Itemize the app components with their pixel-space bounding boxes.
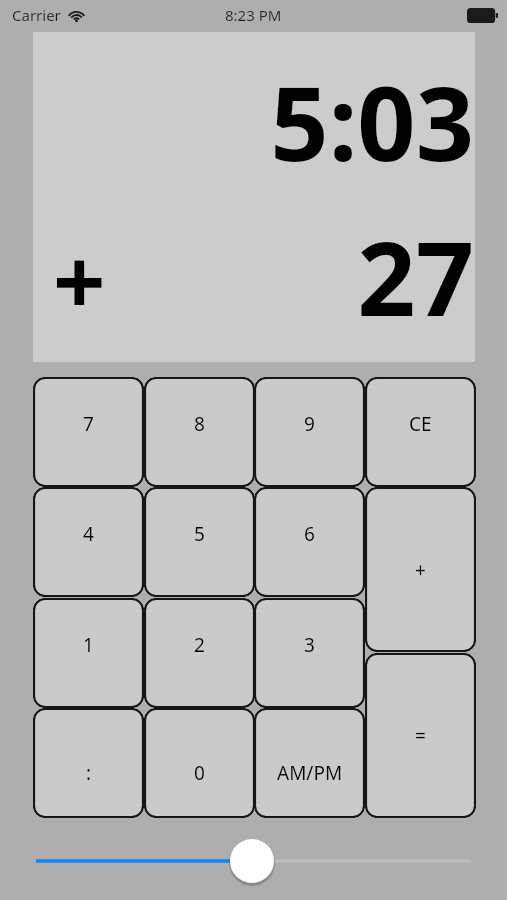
staticText: 6: [304, 521, 315, 547]
staticText: :: [86, 760, 92, 786]
button[interactable]: =: [365, 653, 476, 818]
button[interactable]: +: [365, 487, 476, 652]
button[interactable]: 3: [254, 598, 365, 708]
staticText: 3: [304, 632, 315, 658]
button[interactable]: 4: [33, 487, 144, 597]
staticText: 1: [83, 632, 94, 658]
staticText: 9: [304, 411, 315, 437]
button[interactable]: 8: [144, 377, 255, 487]
staticText: +: [53, 217, 106, 342]
staticText: 7: [83, 411, 94, 437]
staticText: 0: [194, 760, 205, 786]
button[interactable]: 9: [254, 377, 365, 487]
staticText: 5: [194, 521, 205, 547]
button[interactable]: 0: [144, 708, 255, 818]
button[interactable]: 5: [144, 487, 255, 597]
button[interactable]: Adjust value: [0, 836, 507, 886]
button[interactable]: 7: [33, 377, 144, 487]
button[interactable]: AM/PM: [254, 708, 365, 818]
staticText: 27: [357, 207, 474, 346]
staticText: 5:03: [270, 52, 474, 191]
staticText: 8:23 PM: [225, 5, 282, 25]
staticText: =: [415, 723, 426, 749]
staticText: CE: [409, 411, 432, 437]
staticText: 2: [194, 632, 205, 658]
staticText: Carrier: [12, 5, 61, 25]
staticText: +: [415, 557, 426, 583]
button[interactable]: 1: [33, 598, 144, 708]
button[interactable]: :: [33, 708, 144, 818]
button[interactable]: CE: [365, 377, 476, 487]
staticText: 4: [83, 521, 94, 547]
staticText: AM/PM: [277, 760, 343, 786]
button[interactable]: 2: [144, 598, 255, 708]
staticText: 8: [194, 411, 205, 437]
button[interactable]: 6: [254, 487, 365, 597]
